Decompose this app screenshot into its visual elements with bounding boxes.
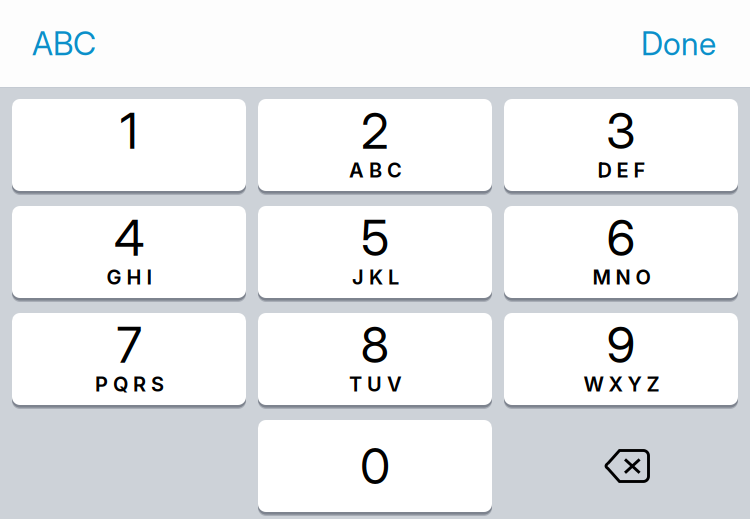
staticText: 4 bbox=[114, 208, 144, 268]
button[interactable]: 7 bbox=[12, 313, 246, 405]
button[interactable]: 2 bbox=[258, 99, 492, 191]
button[interactable]: 1 bbox=[12, 99, 246, 191]
button[interactable]: 8 bbox=[258, 313, 492, 405]
staticText: Done bbox=[641, 24, 716, 63]
staticText: WXYZ bbox=[583, 372, 659, 396]
staticText: JKL bbox=[352, 265, 399, 289]
button[interactable]: ABC bbox=[20, 8, 108, 79]
staticText: 3 bbox=[606, 101, 636, 161]
staticText: 8 bbox=[360, 315, 389, 375]
staticText: TUV bbox=[349, 372, 402, 396]
staticText: ABC bbox=[32, 24, 96, 63]
staticText: DEF bbox=[597, 158, 645, 182]
staticText: 7 bbox=[116, 315, 141, 375]
staticText: 2 bbox=[361, 101, 389, 161]
button[interactable]: 3 bbox=[504, 99, 738, 191]
staticText: GHI bbox=[106, 265, 152, 289]
staticText: 0 bbox=[360, 436, 390, 496]
staticText: 9 bbox=[606, 315, 635, 375]
button[interactable]: Delete bbox=[504, 420, 738, 512]
staticText: ABC bbox=[349, 158, 402, 182]
staticText: 1 bbox=[120, 101, 138, 161]
staticText: 6 bbox=[606, 208, 635, 268]
button[interactable]: Done bbox=[629, 8, 728, 79]
button[interactable]: 6 bbox=[504, 206, 738, 298]
staticText: MNO bbox=[592, 265, 650, 289]
button[interactable]: 9 bbox=[504, 313, 738, 405]
staticText: PQRS bbox=[95, 372, 164, 396]
button[interactable]: 5 bbox=[258, 206, 492, 298]
staticText: 5 bbox=[361, 208, 389, 268]
button[interactable]: 4 bbox=[12, 206, 246, 298]
button[interactable]: 0 bbox=[258, 420, 492, 512]
